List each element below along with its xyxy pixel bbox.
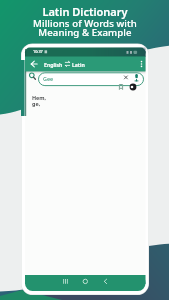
- button[interactable]: [121, 73, 130, 81]
- staticText: ge,: [32, 100, 41, 107]
- staticText: Hem,: [32, 94, 47, 101]
- button[interactable]: [98, 275, 114, 289]
- staticText: English: [44, 61, 63, 68]
- button[interactable]: [129, 83, 137, 91]
- staticText: Latin: [72, 61, 85, 68]
- button[interactable]: [56, 275, 72, 289]
- staticText: Millions of Words with: [33, 17, 137, 30]
- staticText: Gee: [43, 75, 54, 82]
- staticText: Latin Dictionary: [42, 4, 128, 19]
- button[interactable]: [77, 275, 93, 289]
- button[interactable]: [132, 72, 141, 82]
- button[interactable]: [137, 59, 146, 69]
- button[interactable]: [29, 59, 39, 69]
- button[interactable]: [117, 83, 125, 91]
- button[interactable]: [38, 72, 144, 86]
- staticText: Meaning & Example: [38, 26, 132, 39]
- staticText: 10:37: [33, 49, 43, 54]
